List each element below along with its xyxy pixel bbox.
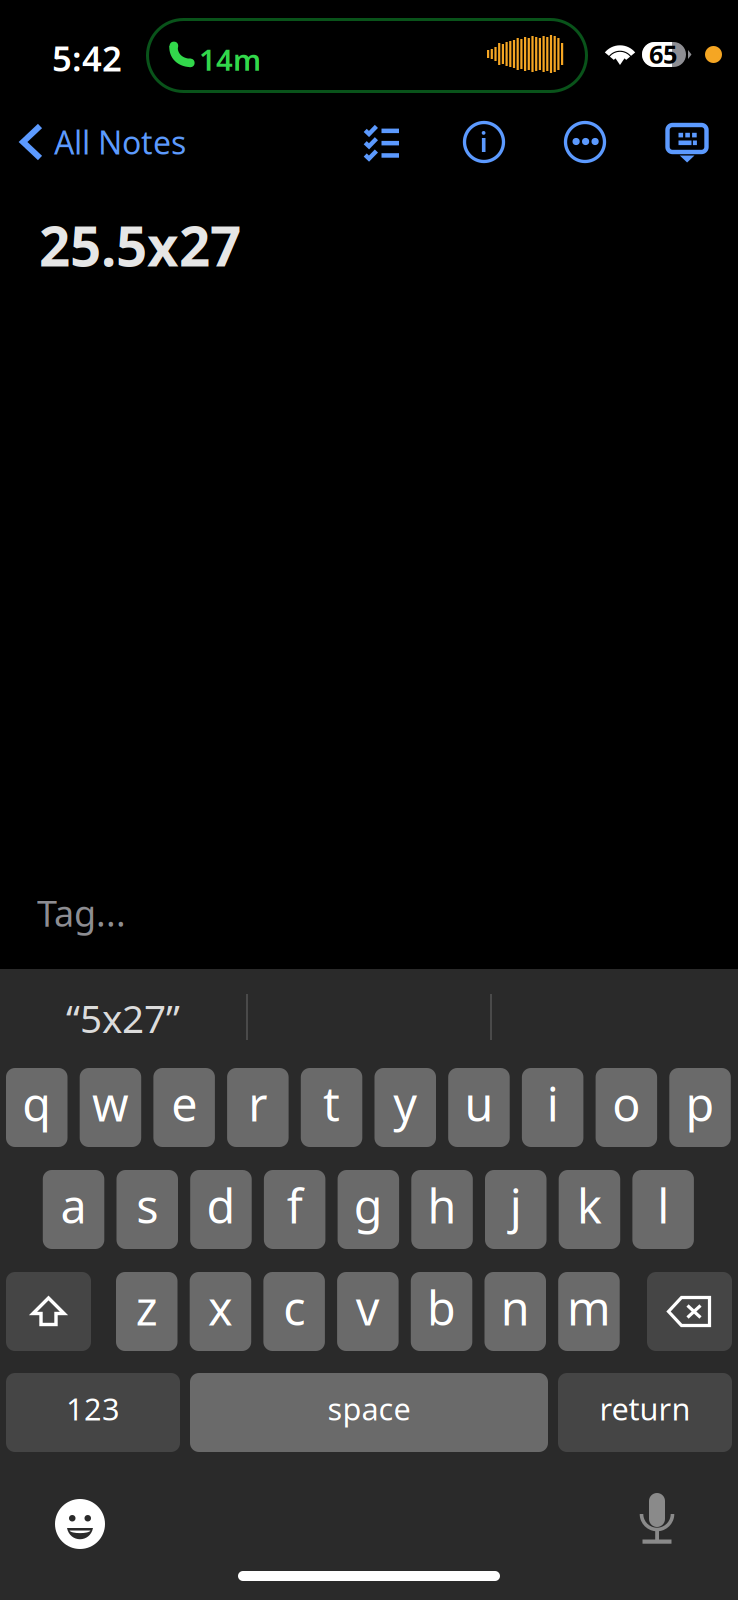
button[interactable]: p [669, 1068, 731, 1147]
button[interactable]: u [448, 1068, 510, 1147]
staticText: v [356, 1276, 380, 1338]
button[interactable]: i [522, 1068, 583, 1147]
staticText: 5:42 [52, 35, 122, 81]
staticText: f [287, 1174, 303, 1236]
button[interactable]: Shift [6, 1272, 91, 1351]
button[interactable]: n [484, 1272, 546, 1351]
button[interactable]: a [43, 1170, 104, 1249]
staticText: 25.5x27 [39, 209, 241, 282]
staticText: y [393, 1072, 417, 1134]
staticText: w [92, 1072, 129, 1134]
staticText: 123 [66, 1388, 120, 1429]
staticText: m [567, 1276, 611, 1338]
staticText: z [136, 1276, 158, 1338]
button[interactable]: l [632, 1170, 694, 1249]
button[interactable]: Hide Keyboard [659, 116, 715, 172]
staticText: All Notes [54, 121, 186, 163]
staticText: q [22, 1072, 51, 1134]
button[interactable]: f [264, 1170, 325, 1249]
staticText: d [206, 1174, 235, 1236]
staticText: g [354, 1174, 383, 1236]
button[interactable]: Checklist [364, 125, 420, 181]
button[interactable]: h [411, 1170, 473, 1249]
staticText: Tag... [37, 889, 126, 937]
staticText: 14m [199, 40, 261, 79]
staticText: 65 [649, 37, 677, 71]
button[interactable]: x [190, 1272, 251, 1351]
button[interactable]: space [190, 1373, 548, 1452]
button[interactable]: c [263, 1272, 325, 1351]
button[interactable]: r [227, 1068, 289, 1147]
staticText: j [510, 1174, 522, 1236]
staticText: k [577, 1174, 602, 1236]
button[interactable]: d [190, 1170, 252, 1249]
button[interactable]: Emoji [45, 1489, 115, 1559]
staticText: t [323, 1072, 340, 1134]
staticText: n [501, 1276, 530, 1338]
button[interactable]: t [301, 1068, 362, 1147]
button[interactable]: w [80, 1068, 141, 1147]
staticText: o [612, 1072, 640, 1134]
staticText: l [657, 1174, 669, 1236]
button[interactable]: All Notes [14, 112, 192, 172]
button[interactable]: e [153, 1068, 215, 1147]
staticText: b [427, 1276, 456, 1338]
button[interactable]: Info [454, 112, 514, 172]
button[interactable]: v [337, 1272, 399, 1351]
staticText: e [171, 1072, 197, 1134]
button[interactable]: j [485, 1170, 546, 1249]
staticText: h [428, 1174, 457, 1236]
button[interactable]: Delete [647, 1272, 732, 1351]
button[interactable]: q [6, 1068, 67, 1147]
button[interactable]: 123 [6, 1373, 180, 1452]
staticText: u [464, 1072, 493, 1134]
button[interactable]: y [374, 1068, 436, 1147]
staticText: i [547, 1072, 559, 1134]
button[interactable]: Dictate [622, 1485, 692, 1555]
button[interactable]: “5x27” [0, 986, 246, 1050]
button[interactable]: g [338, 1170, 399, 1249]
button[interactable]: k [559, 1170, 620, 1249]
button[interactable]: return [558, 1373, 732, 1452]
staticText: r [248, 1072, 267, 1134]
staticText: s [136, 1174, 158, 1236]
staticText: a [60, 1174, 86, 1236]
button[interactable]: b [411, 1272, 472, 1351]
button[interactable]: o [596, 1068, 657, 1147]
button[interactable]: More [555, 112, 615, 172]
staticText: “5x27” [66, 992, 180, 1044]
staticText: x [208, 1276, 233, 1338]
staticText: c [283, 1276, 305, 1338]
staticText: p [686, 1072, 715, 1134]
button[interactable]: s [116, 1170, 178, 1249]
staticText: space [327, 1388, 410, 1429]
button[interactable]: z [116, 1272, 177, 1351]
button[interactable]: m [558, 1272, 620, 1351]
staticText: return [599, 1388, 690, 1429]
